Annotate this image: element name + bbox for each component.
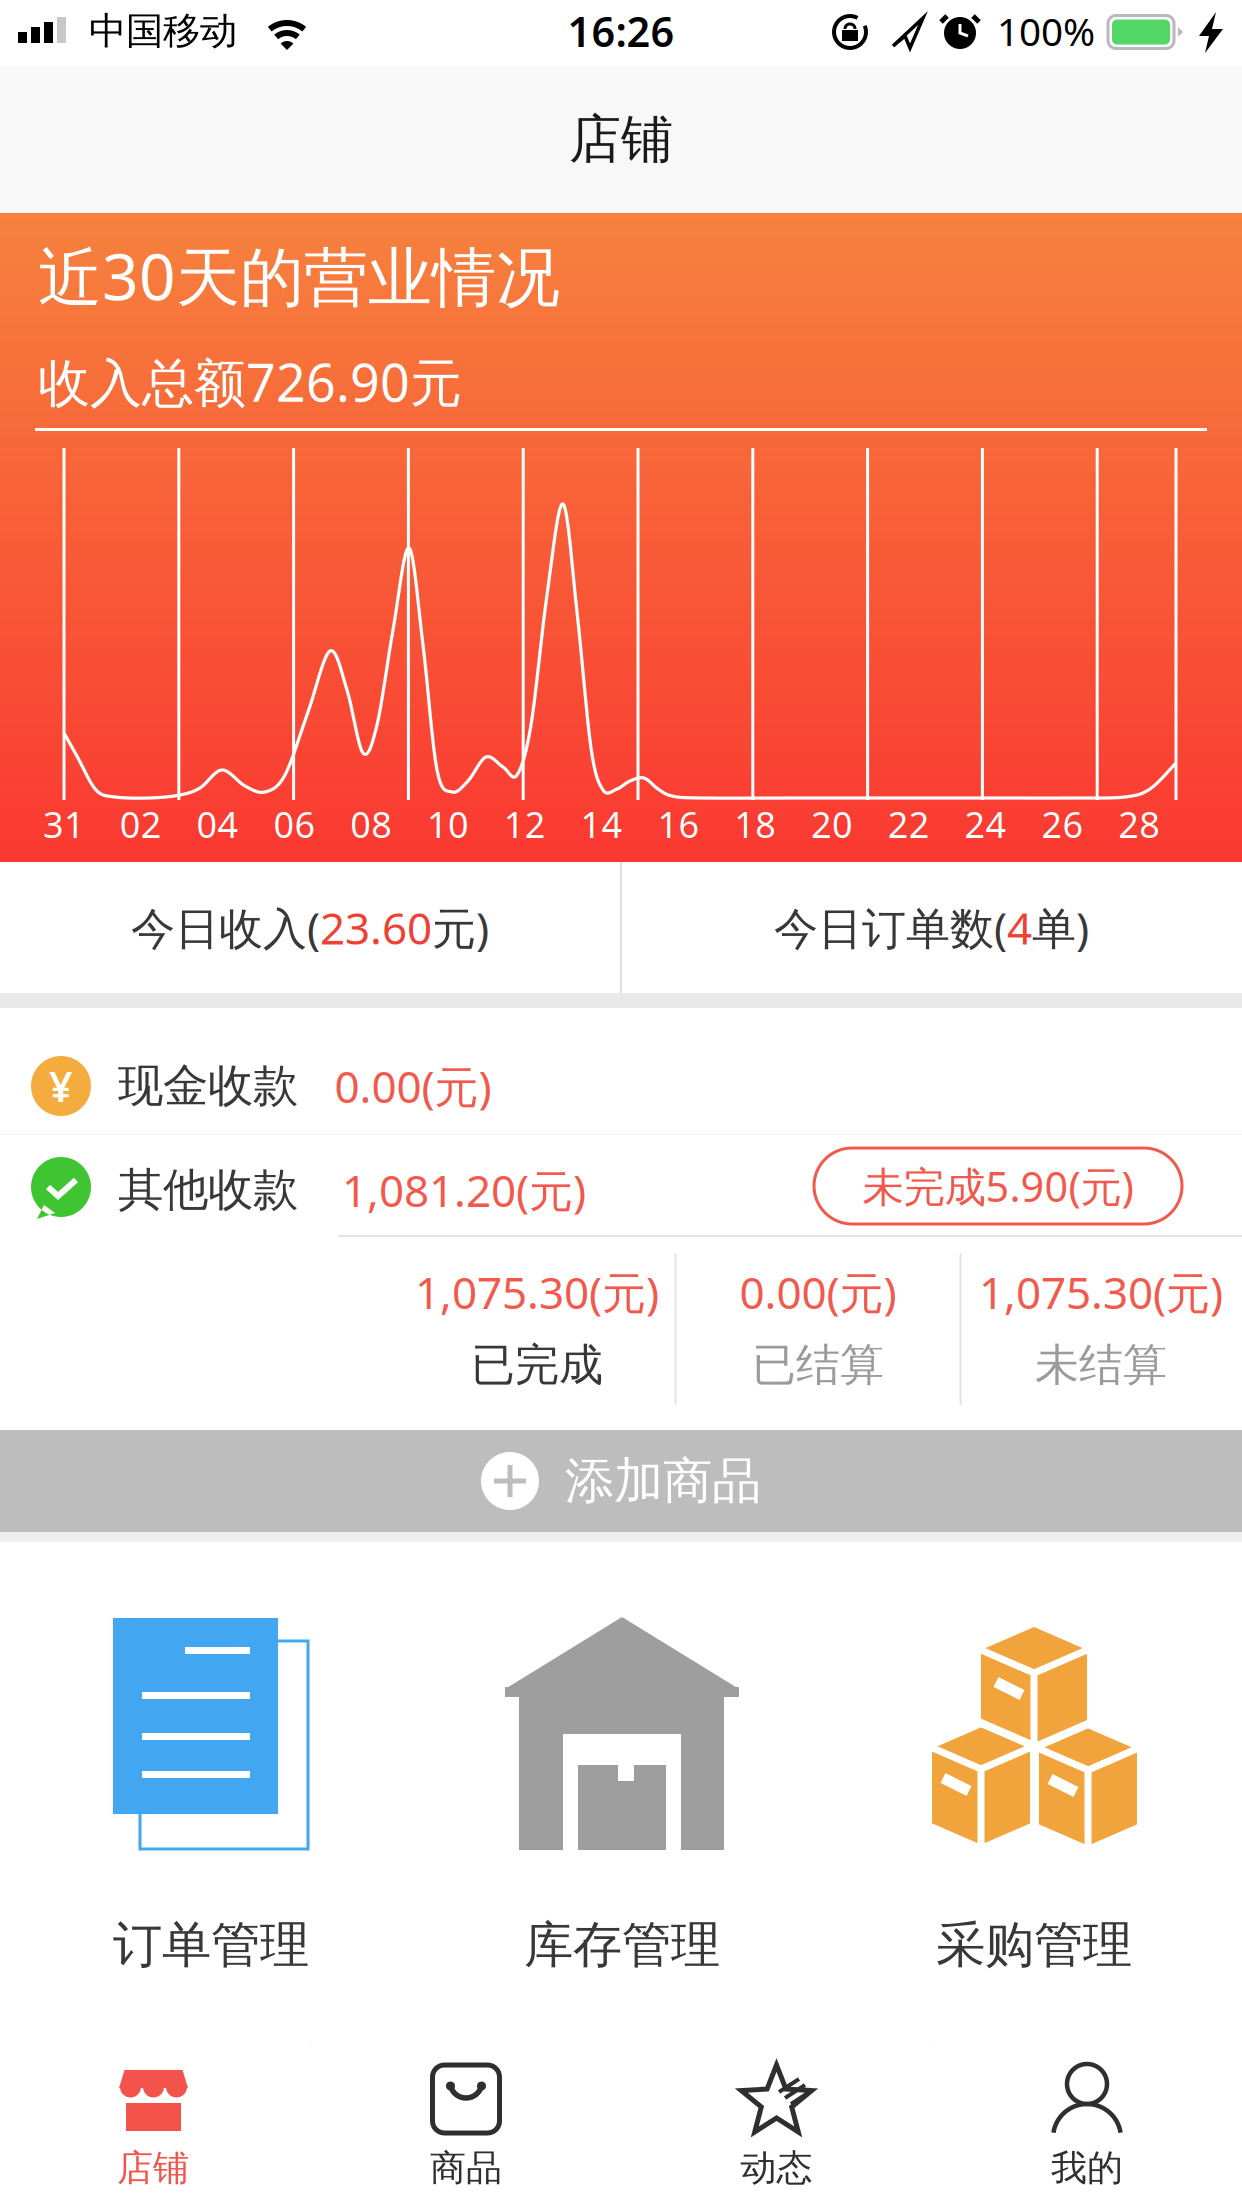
staticText: 31 bbox=[43, 800, 85, 848]
staticText: 10 bbox=[427, 800, 469, 848]
staticText: 20 bbox=[811, 800, 853, 848]
staticText: 店铺 bbox=[569, 108, 673, 171]
staticText: 14 bbox=[581, 800, 623, 848]
staticText: 订单管理 bbox=[113, 1915, 309, 1975]
staticText: 收入总额726.90元 bbox=[38, 347, 462, 416]
staticText: 未完成5.90(元) bbox=[862, 1159, 1133, 1213]
staticText: 02 bbox=[120, 800, 162, 848]
button[interactable]: 商品 bbox=[310, 2046, 621, 2208]
staticText: 22 bbox=[888, 800, 930, 848]
button[interactable]: 库存管理 bbox=[414, 1542, 828, 2046]
staticText: 今日收入( bbox=[131, 898, 320, 957]
staticText: 28 bbox=[1118, 800, 1160, 848]
button[interactable]: 采购管理 bbox=[828, 1542, 1242, 2046]
button[interactable]: 订单管理 bbox=[0, 1542, 414, 2046]
staticText: 1,075.30(元) bbox=[979, 1263, 1223, 1321]
button[interactable]: 动态 bbox=[621, 2046, 931, 2208]
button[interactable]: 今日收入( bbox=[0, 862, 620, 993]
staticText: 我的 bbox=[1051, 2146, 1123, 2190]
staticText: 06 bbox=[273, 800, 315, 848]
staticText: 16:26 bbox=[567, 4, 674, 58]
button[interactable]: 我的 bbox=[931, 2046, 1242, 2208]
button[interactable]: 今日订单数( bbox=[621, 862, 1242, 993]
staticText: 已结算 bbox=[752, 1338, 884, 1392]
staticText: 12 bbox=[504, 800, 546, 848]
staticText: 4 bbox=[1007, 898, 1032, 957]
staticText: 26 bbox=[1041, 800, 1083, 848]
button[interactable]: 未完成5.90(元) bbox=[814, 1148, 1182, 1224]
staticText: 元) bbox=[432, 898, 489, 957]
staticText: 08 bbox=[350, 800, 392, 848]
staticText: 23.60 bbox=[320, 898, 432, 957]
staticText: 商品 bbox=[430, 2146, 502, 2190]
staticText: 现金收款 bbox=[118, 1058, 298, 1114]
staticText: 1,081.20(元) bbox=[342, 1161, 586, 1219]
staticText: ¥ bbox=[49, 1059, 73, 1113]
button[interactable]: ¥ bbox=[0, 1008, 1242, 1430]
staticText: 店铺 bbox=[117, 2146, 189, 2190]
staticText: 18 bbox=[734, 800, 776, 848]
staticText: 16 bbox=[657, 800, 699, 848]
staticText: 0.00(元) bbox=[334, 1057, 491, 1115]
button[interactable]: 其他收款 bbox=[0, 1008, 1242, 1262]
staticText: 单) bbox=[1032, 898, 1089, 957]
staticText: 已完成 bbox=[471, 1338, 603, 1392]
staticText: 其他收款 bbox=[118, 1162, 298, 1218]
staticText: 04 bbox=[197, 800, 239, 848]
staticText: 未结算 bbox=[1035, 1338, 1167, 1392]
staticText: 采购管理 bbox=[936, 1915, 1132, 1975]
staticText: 24 bbox=[965, 800, 1007, 848]
staticText: 近30天的营业情况 bbox=[38, 233, 560, 318]
button[interactable]: 添加商品 bbox=[0, 1430, 1242, 1532]
staticText: 动态 bbox=[740, 2146, 812, 2190]
staticText: 中国移动 bbox=[89, 8, 237, 54]
staticText: 0.00(元) bbox=[739, 1263, 896, 1321]
staticText: 今日订单数( bbox=[774, 898, 1007, 957]
staticText: 库存管理 bbox=[524, 1915, 720, 1975]
button[interactable]: 店铺 bbox=[0, 2046, 310, 2208]
staticText: 1,075.30(元) bbox=[415, 1263, 659, 1321]
staticText: 添加商品 bbox=[565, 1451, 761, 1511]
staticText: 100% bbox=[997, 5, 1095, 57]
